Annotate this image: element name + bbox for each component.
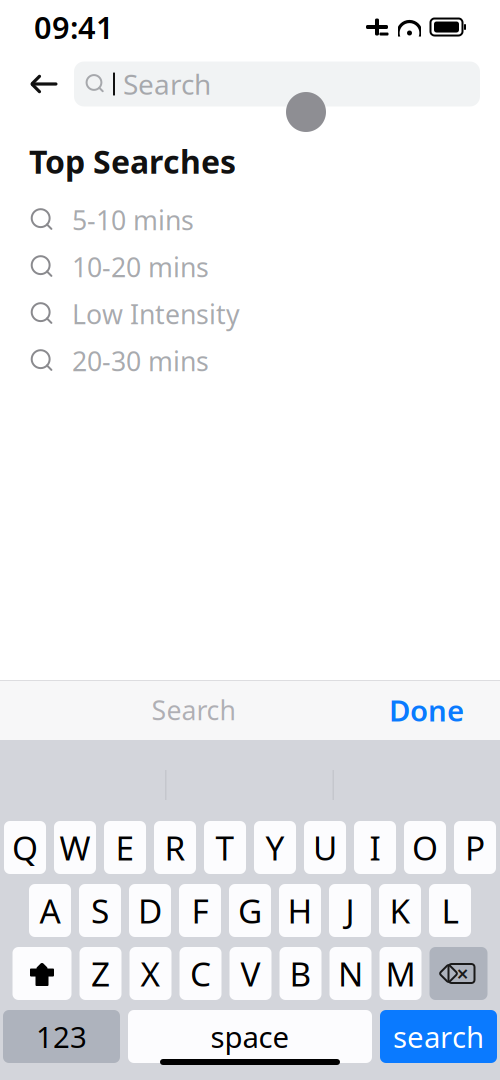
- staticText: Top Searches: [29, 140, 236, 182]
- button[interactable]: 10-20 mins: [0, 243, 500, 290]
- button[interactable]: Low Intensity: [0, 290, 500, 337]
- button[interactable]: W: [54, 821, 96, 874]
- staticText: G: [238, 888, 262, 933]
- button[interactable]: T: [204, 821, 246, 874]
- staticText: space: [210, 1017, 289, 1056]
- button[interactable]: search: [380, 1010, 497, 1063]
- button[interactable]: space: [128, 1010, 372, 1063]
- staticText: 10-20 mins: [72, 249, 209, 285]
- button[interactable]: F: [179, 884, 221, 937]
- staticText: Done: [389, 690, 464, 729]
- staticText: Search: [123, 65, 211, 103]
- button[interactable]: I: [354, 821, 396, 874]
- staticText: Y: [265, 825, 284, 870]
- button[interactable]: A: [29, 884, 71, 937]
- staticText: Q: [12, 825, 38, 870]
- button[interactable]: X: [129, 947, 171, 1000]
- staticText: E: [115, 825, 134, 870]
- button[interactable]: O: [404, 821, 446, 874]
- staticText: Search: [151, 692, 235, 728]
- staticText: W: [59, 825, 90, 870]
- staticText: O: [412, 825, 438, 870]
- button[interactable]: V: [229, 947, 271, 1000]
- staticText: L: [441, 888, 458, 933]
- staticText: F: [191, 888, 208, 933]
- staticText: X: [140, 951, 160, 996]
- button[interactable]: Q: [4, 821, 46, 874]
- staticText: R: [164, 825, 185, 870]
- staticText: S: [91, 888, 109, 933]
- staticText: J: [345, 888, 354, 933]
- button[interactable]: R: [154, 821, 196, 874]
- staticText: D: [138, 888, 162, 933]
- staticText: V: [240, 951, 260, 996]
- button[interactable]: S: [79, 884, 121, 937]
- button[interactable]: Search: [74, 61, 480, 106]
- staticText: Low Intensity: [72, 296, 240, 332]
- button[interactable]: D: [129, 884, 171, 937]
- staticText: I: [369, 825, 380, 870]
- staticText: Z: [91, 951, 110, 996]
- button[interactable]: K: [379, 884, 421, 937]
- staticText: U: [313, 825, 337, 870]
- staticText: 123: [36, 1017, 87, 1056]
- button[interactable]: E: [104, 821, 146, 874]
- button[interactable]: 5-10 mins: [0, 196, 500, 243]
- staticText: ×: [456, 959, 468, 988]
- button[interactable]: L: [429, 884, 471, 937]
- button[interactable]: H: [279, 884, 321, 937]
- button[interactable]: Y: [254, 821, 296, 874]
- button[interactable]: Done: [373, 680, 480, 739]
- button[interactable]: 20-30 mins: [0, 337, 500, 384]
- staticText: P: [465, 825, 485, 870]
- button[interactable]: Z: [79, 947, 121, 1000]
- staticText: C: [190, 951, 211, 996]
- staticText: K: [389, 888, 410, 933]
- staticText: B: [289, 951, 311, 996]
- staticText: 5-10 mins: [72, 202, 194, 238]
- staticText: 20-30 mins: [72, 343, 209, 379]
- button[interactable]: J: [329, 884, 371, 937]
- staticText: N: [338, 951, 363, 996]
- staticText: M: [385, 951, 415, 996]
- button[interactable]: P: [454, 821, 496, 874]
- button[interactable]: B: [279, 947, 321, 1000]
- staticText: A: [39, 888, 60, 933]
- button[interactable]: C: [179, 947, 221, 1000]
- button[interactable]: Shift: [12, 947, 71, 1000]
- staticText: T: [215, 825, 234, 870]
- staticText: 09:41: [34, 7, 114, 47]
- staticText: H: [287, 888, 312, 933]
- button[interactable]: U: [304, 821, 346, 874]
- button[interactable]: G: [229, 884, 271, 937]
- button[interactable]: 123: [3, 1010, 120, 1063]
- button[interactable]: Back: [14, 61, 74, 107]
- button[interactable]: N: [329, 947, 371, 1000]
- staticText: search: [393, 1017, 484, 1056]
- button[interactable]: M: [379, 947, 421, 1000]
- button[interactable]: Delete: [429, 947, 487, 1000]
